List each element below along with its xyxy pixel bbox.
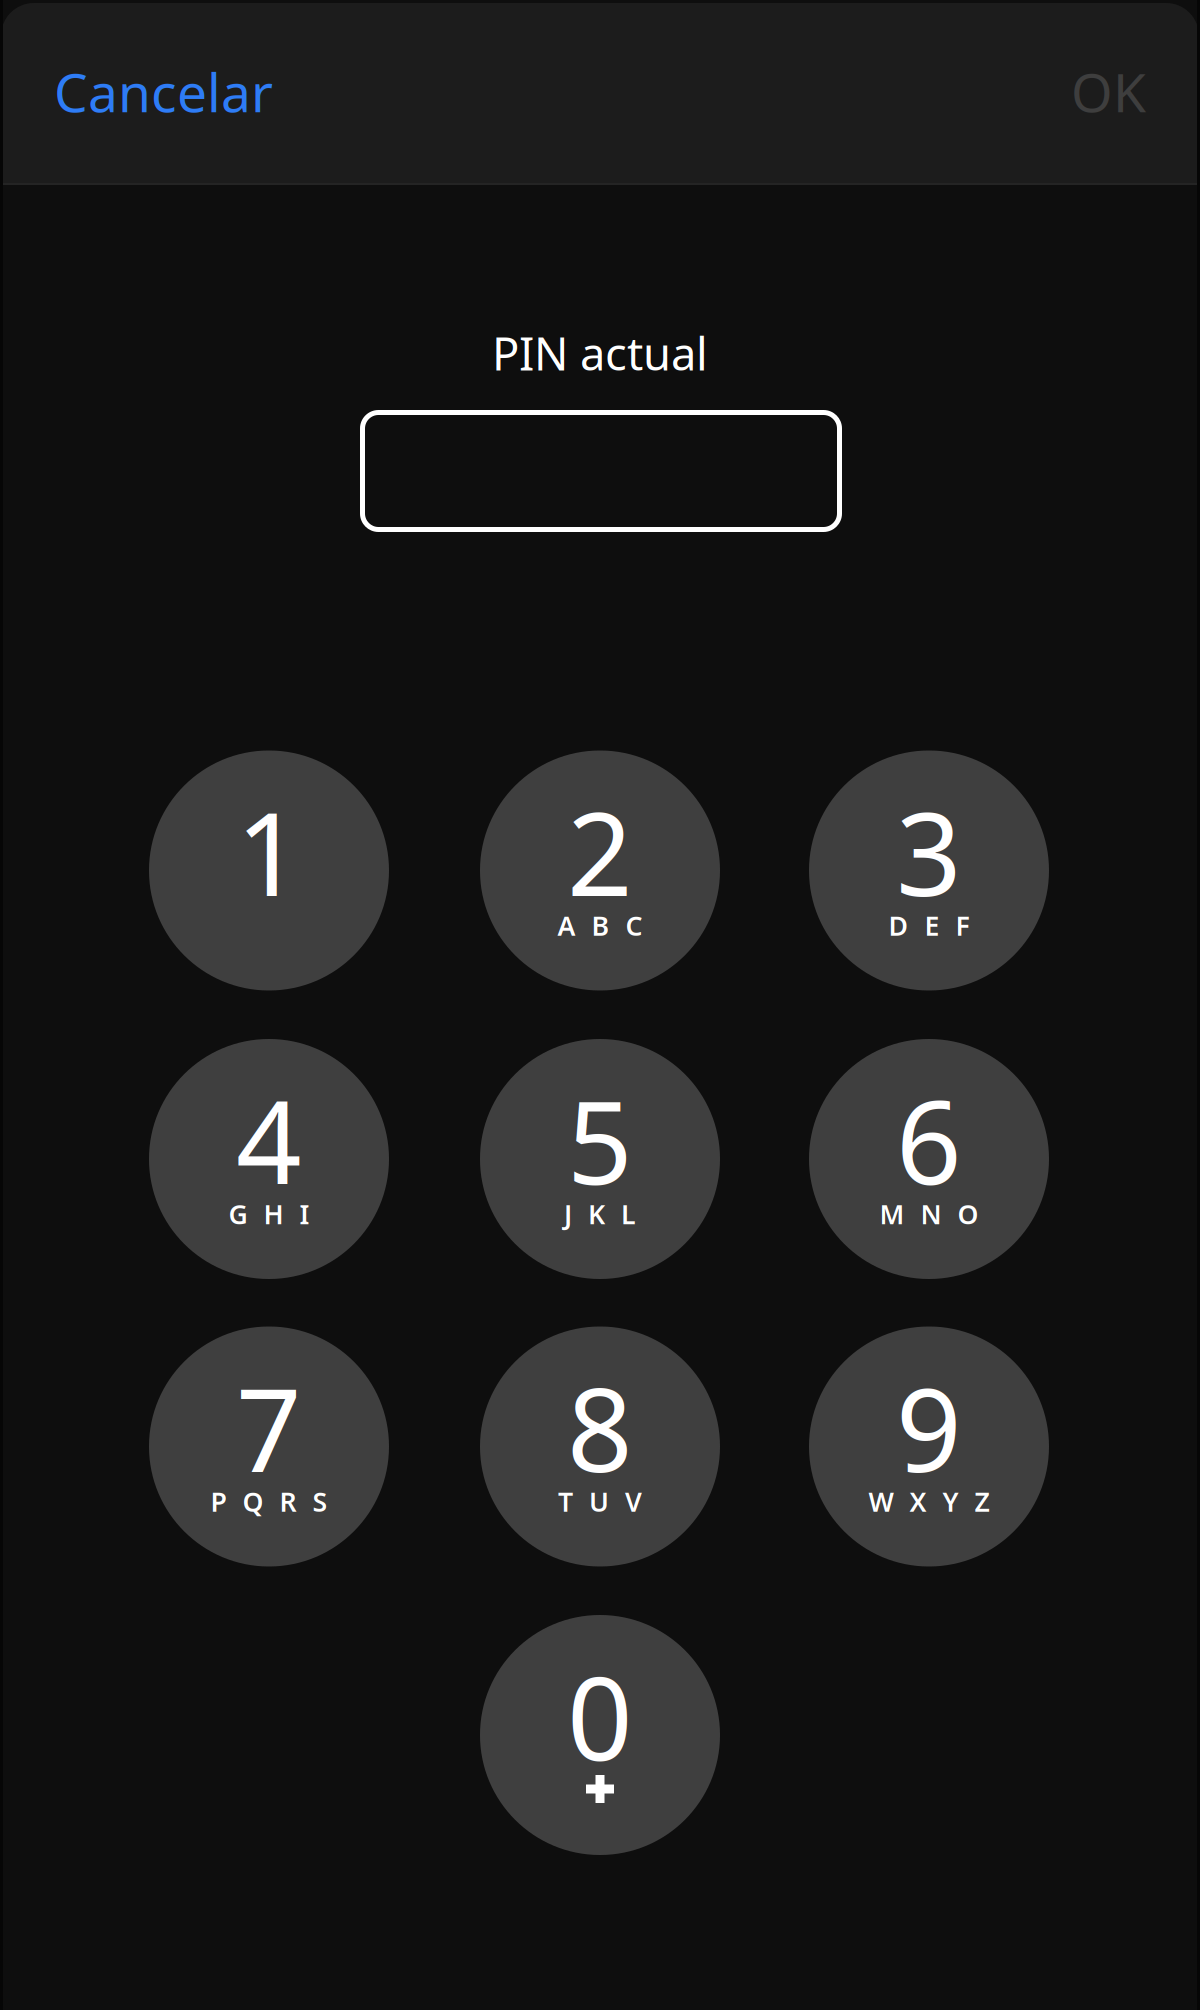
staticText: PIN actual	[492, 323, 708, 383]
button[interactable]: 2	[480, 750, 720, 990]
staticText: F	[955, 908, 969, 943]
staticText: P	[210, 1484, 226, 1519]
button[interactable]: 8	[480, 1326, 720, 1566]
staticText: A	[557, 908, 575, 943]
button[interactable]: 1	[149, 750, 389, 990]
staticText: Y	[942, 1484, 958, 1519]
staticText: Z	[974, 1484, 989, 1519]
staticText: 7	[236, 1351, 302, 1504]
staticText: M	[879, 1196, 904, 1232]
staticText: L	[621, 1196, 636, 1232]
staticText: 2	[567, 775, 633, 928]
staticText: N	[920, 1196, 941, 1232]
staticText: 4	[236, 1064, 302, 1216]
staticText: G	[228, 1196, 247, 1232]
staticText: 0	[567, 1640, 633, 1792]
staticText: OK	[1071, 56, 1146, 127]
staticText: S	[312, 1484, 327, 1519]
staticText: 1	[236, 775, 302, 928]
staticText: R	[279, 1484, 296, 1519]
staticText: 3	[896, 775, 962, 928]
button[interactable]: 5	[480, 1039, 720, 1279]
button[interactable]: 3	[809, 750, 1049, 990]
staticText: V	[625, 1484, 642, 1519]
button[interactable]: 7	[149, 1326, 389, 1566]
staticText: K	[588, 1196, 605, 1232]
button[interactable]: OK	[996, 0, 1200, 183]
staticText: T	[558, 1484, 573, 1519]
staticText: E	[924, 908, 939, 943]
button[interactable]: 0 plus	[480, 1615, 720, 1855]
staticText: B	[591, 908, 609, 943]
staticText: I	[299, 1196, 309, 1232]
staticText: O	[957, 1196, 978, 1232]
staticText: H	[263, 1196, 283, 1232]
button[interactable]: Cancelar	[0, 0, 350, 183]
staticText: J	[564, 1196, 572, 1232]
staticText: 6	[896, 1064, 962, 1216]
button[interactable]: 9	[809, 1326, 1049, 1566]
button[interactable]: 6	[809, 1039, 1049, 1279]
staticText: 8	[567, 1351, 633, 1504]
staticText: 9	[896, 1351, 962, 1504]
button[interactable]: 4	[149, 1039, 389, 1279]
staticText: Q	[242, 1484, 263, 1519]
staticText: X	[909, 1484, 926, 1519]
staticText: Cancelar	[54, 56, 273, 127]
staticText: D	[888, 908, 908, 943]
staticText: C	[625, 908, 642, 943]
staticText: 5	[567, 1064, 633, 1216]
staticText: W	[868, 1484, 893, 1519]
staticText: U	[589, 1484, 609, 1519]
